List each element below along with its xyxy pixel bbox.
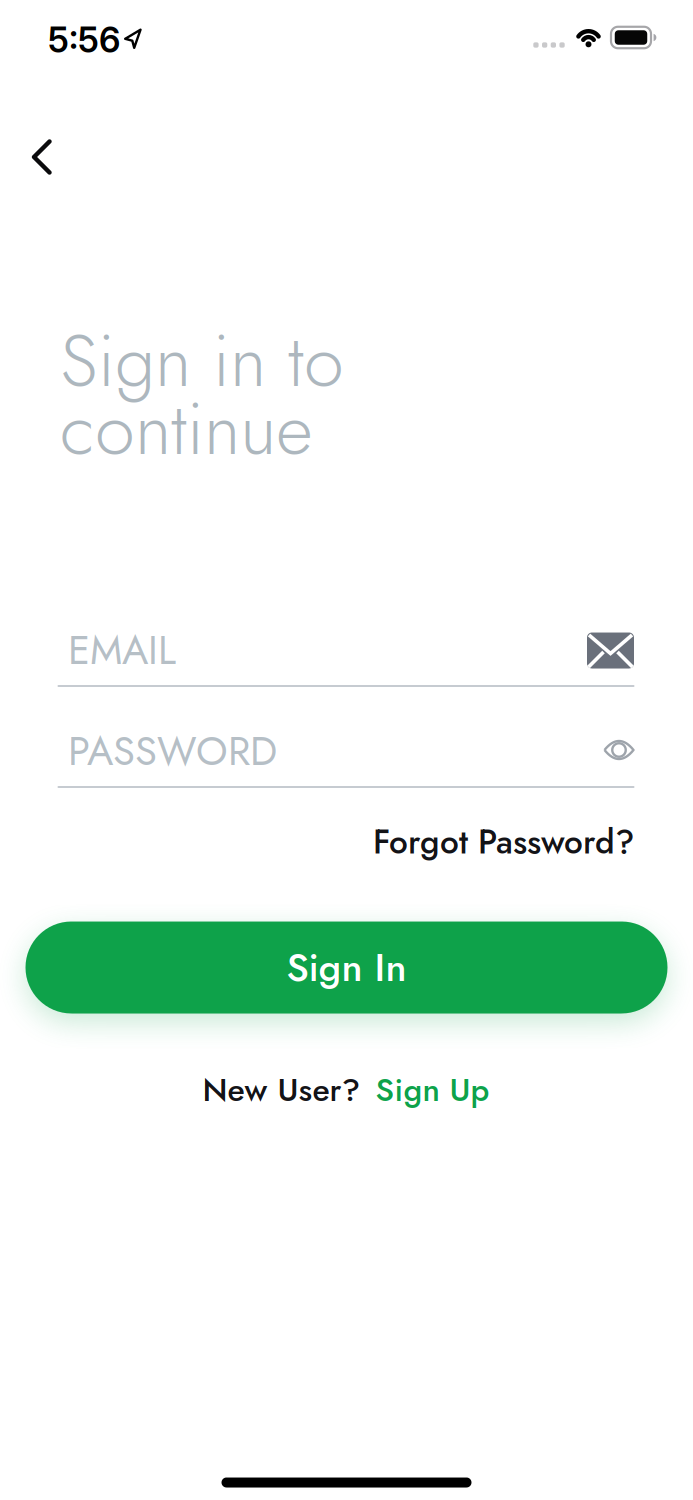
button[interactable]: Show password [597,730,641,770]
staticText: Sign Up [375,1067,489,1113]
button[interactable]: Sign Up [375,1067,489,1113]
staticText: continue [60,377,313,481]
button[interactable]: Back [12,135,72,178]
button[interactable]: Forgot Password? [335,820,635,864]
button[interactable]: Email [57,611,634,687]
staticText: Forgot Password? [373,818,635,866]
staticText: PASSWORD [68,722,277,780]
staticText: 5:56 [48,19,120,61]
staticText: Sign in to [60,309,344,413]
staticText: New User? [202,1067,360,1113]
staticText: Sign In [286,940,406,995]
button[interactable]: Sign In [25,921,667,1013]
staticText: EMAIL [68,621,176,679]
button[interactable]: Password [57,712,634,788]
